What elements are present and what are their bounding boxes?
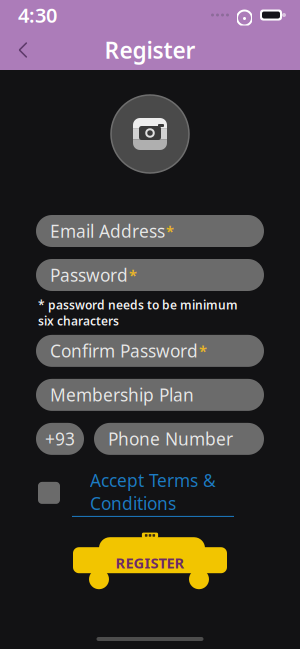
button[interactable]: Phone Number bbox=[94, 423, 264, 455]
button[interactable]: Accept terms checkbox bbox=[38, 482, 60, 504]
staticText: Email Address bbox=[50, 219, 165, 242]
staticText: * bbox=[166, 221, 174, 241]
button[interactable]: Accept Terms & Conditions bbox=[72, 469, 234, 517]
button[interactable]: +93 bbox=[36, 423, 84, 455]
staticText: Confirm Password bbox=[50, 339, 198, 362]
staticText: * bbox=[199, 341, 207, 361]
button[interactable]: Password bbox=[36, 259, 264, 291]
staticText: Register bbox=[104, 35, 195, 65]
staticText: REGISTER bbox=[115, 553, 184, 573]
staticText: * bbox=[129, 265, 137, 285]
staticText: Membership Plan bbox=[50, 383, 194, 406]
button[interactable]: Email Address bbox=[36, 215, 264, 247]
staticText: 4:30 bbox=[18, 2, 57, 28]
staticText: +93 bbox=[45, 427, 75, 450]
staticText: Password bbox=[50, 263, 128, 286]
button[interactable]: Membership Plan bbox=[36, 379, 264, 411]
button[interactable]: Back bbox=[10, 35, 36, 65]
staticText: Phone Number bbox=[108, 427, 233, 450]
staticText: Accept Terms & Conditions bbox=[90, 469, 216, 515]
button[interactable]: REGISTER bbox=[73, 533, 227, 589]
button[interactable]: Confirm Password bbox=[36, 335, 264, 367]
staticText: * password needs to be minimum six chara… bbox=[38, 297, 238, 329]
button[interactable]: Add profile photo bbox=[111, 95, 189, 173]
